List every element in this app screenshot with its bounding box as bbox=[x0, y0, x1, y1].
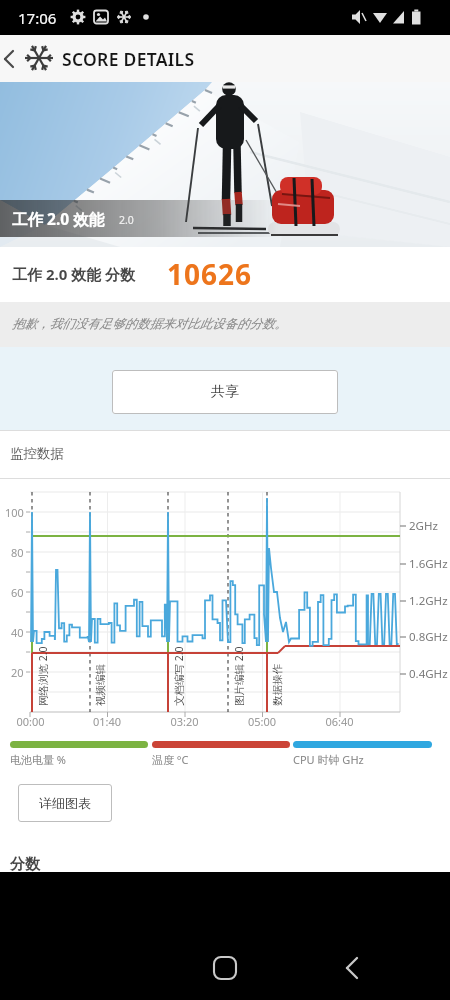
staticText: 详细图表 bbox=[39, 795, 91, 811]
staticText: 共享 bbox=[211, 383, 239, 401]
button[interactable] bbox=[203, 946, 247, 990]
staticText: 10626 bbox=[167, 255, 253, 293]
button[interactable] bbox=[330, 946, 374, 990]
staticText: CPU 时钟 GHz bbox=[293, 752, 364, 767]
staticText: 监控数据 bbox=[10, 445, 64, 462]
button[interactable] bbox=[0, 43, 22, 75]
staticText: 工作 2.0 效能 bbox=[12, 208, 105, 229]
button[interactable]: 共享 bbox=[112, 370, 338, 414]
button[interactable]: 详细图表 bbox=[18, 784, 112, 822]
staticText: 分数 bbox=[10, 855, 40, 874]
staticText: 工作 2.0 效能 分数 bbox=[12, 264, 136, 284]
staticText: 电池电量 % bbox=[10, 752, 67, 767]
staticText: 2.0 bbox=[119, 213, 134, 227]
staticText: 17:06 bbox=[18, 8, 57, 28]
staticText: 抱歉，我们没有足够的数据来对比此设备的分数。 bbox=[12, 316, 287, 332]
staticText: SCORE DETAILS bbox=[62, 47, 195, 71]
staticText: 温度 °C bbox=[152, 752, 189, 767]
